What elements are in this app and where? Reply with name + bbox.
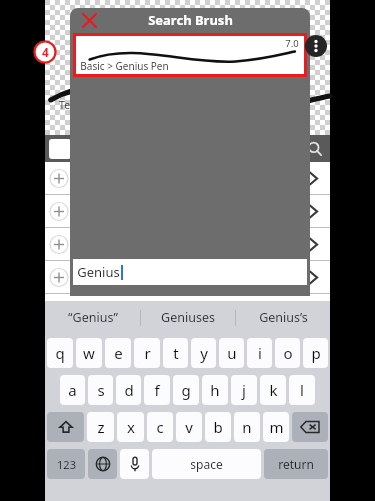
staticText: q: [55, 343, 65, 363]
button[interactable]: d: [116, 375, 141, 405]
staticText: Search Brush: [148, 11, 233, 29]
button[interactable]: k: [260, 375, 286, 405]
staticText: return: [278, 456, 314, 472]
button[interactable]: Close: [80, 11, 98, 29]
staticText: c: [156, 417, 164, 437]
button[interactable]: Change keyboard: [88, 449, 117, 479]
staticText: Genius: [77, 263, 120, 281]
button[interactable]: p: [303, 338, 328, 368]
staticText: d: [124, 380, 134, 400]
button[interactable]: e: [105, 338, 131, 368]
staticText: h: [210, 380, 220, 400]
staticText: n: [242, 417, 252, 437]
staticText: k: [269, 380, 278, 400]
staticText: space: [190, 456, 223, 472]
button[interactable]: 7.0: [76, 36, 304, 74]
staticText: Felt Tip Pen (Soft): [73, 278, 151, 291]
staticText: g: [181, 380, 191, 400]
staticText: o: [283, 343, 293, 363]
button[interactable]: t: [163, 338, 188, 368]
button[interactable]: y: [191, 338, 216, 368]
button[interactable]: m: [263, 412, 289, 442]
staticText: Geniuses: [161, 309, 215, 326]
button[interactable]: More options: [305, 35, 327, 57]
button[interactable]: h: [202, 375, 228, 405]
button[interactable]: o: [275, 338, 300, 368]
button[interactable]: Voice input: [120, 449, 149, 479]
button[interactable]: Dip Pen (Hard): [45, 195, 330, 228]
staticText: e: [114, 343, 123, 363]
staticText: u: [227, 343, 237, 363]
staticText: t: [173, 343, 179, 363]
button[interactable]: Genius: [73, 259, 307, 285]
staticText: 7.0: [285, 37, 299, 50]
button[interactable]: x: [117, 412, 144, 442]
staticText: Basic > Genius Pen: [80, 59, 169, 73]
staticText: 123: [57, 457, 76, 472]
staticText: r: [144, 343, 151, 363]
staticText: x: [127, 417, 135, 437]
staticText: a: [68, 380, 77, 400]
button[interactable]: g: [173, 375, 199, 405]
button[interactable]: v: [176, 412, 202, 442]
button[interactable]: n: [234, 412, 260, 442]
button[interactable]: Shift: [47, 412, 84, 442]
staticText: s: [97, 380, 105, 400]
button[interactable]: space: [152, 449, 261, 479]
button[interactable]: z: [87, 412, 114, 442]
button[interactable]: Backspace: [292, 412, 328, 442]
button[interactable]: u: [219, 338, 244, 368]
staticText: y: [200, 343, 208, 363]
button[interactable]: s: [88, 375, 113, 405]
staticText: i: [258, 343, 262, 363]
staticText: l: [300, 380, 304, 400]
button[interactable]: return: [264, 449, 328, 479]
button[interactable]: Search: [304, 138, 326, 160]
button[interactable]: Dip Pen (Soft): [45, 162, 330, 195]
button[interactable]: 123: [47, 449, 85, 479]
button[interactable]: w: [76, 338, 102, 368]
button[interactable]: Felt Tip Pen (Soft): [45, 261, 330, 294]
button[interactable]: q: [47, 338, 73, 368]
staticText: j: [242, 380, 246, 400]
staticText: w: [83, 343, 95, 363]
button[interactable]: b: [205, 412, 231, 442]
staticText: z: [97, 417, 105, 437]
button[interactable]: a: [60, 375, 85, 405]
button[interactable]: r: [134, 338, 160, 368]
staticText: b: [213, 417, 223, 437]
staticText: v: [185, 417, 193, 437]
button[interactable]: l: [289, 375, 315, 405]
button[interactable]: f: [144, 375, 170, 405]
button[interactable]: “Genius”: [45, 301, 140, 334]
button[interactable]: Dip Pen (Bleed): [45, 228, 330, 261]
button[interactable]: c: [147, 412, 173, 442]
staticText: p: [311, 343, 321, 363]
staticText: Technical Pen: [59, 98, 126, 112]
staticText: m: [269, 417, 284, 437]
button[interactable]: j: [231, 375, 257, 405]
staticText: f: [154, 380, 160, 400]
button[interactable]: Color: [49, 139, 71, 159]
button[interactable]: Genius’s: [236, 301, 330, 334]
button[interactable]: i: [247, 338, 272, 368]
button[interactable]: Geniuses: [141, 301, 235, 334]
staticText: 4: [42, 44, 49, 60]
staticText: Genius’s: [259, 309, 308, 326]
staticText: “Genius”: [68, 309, 118, 326]
